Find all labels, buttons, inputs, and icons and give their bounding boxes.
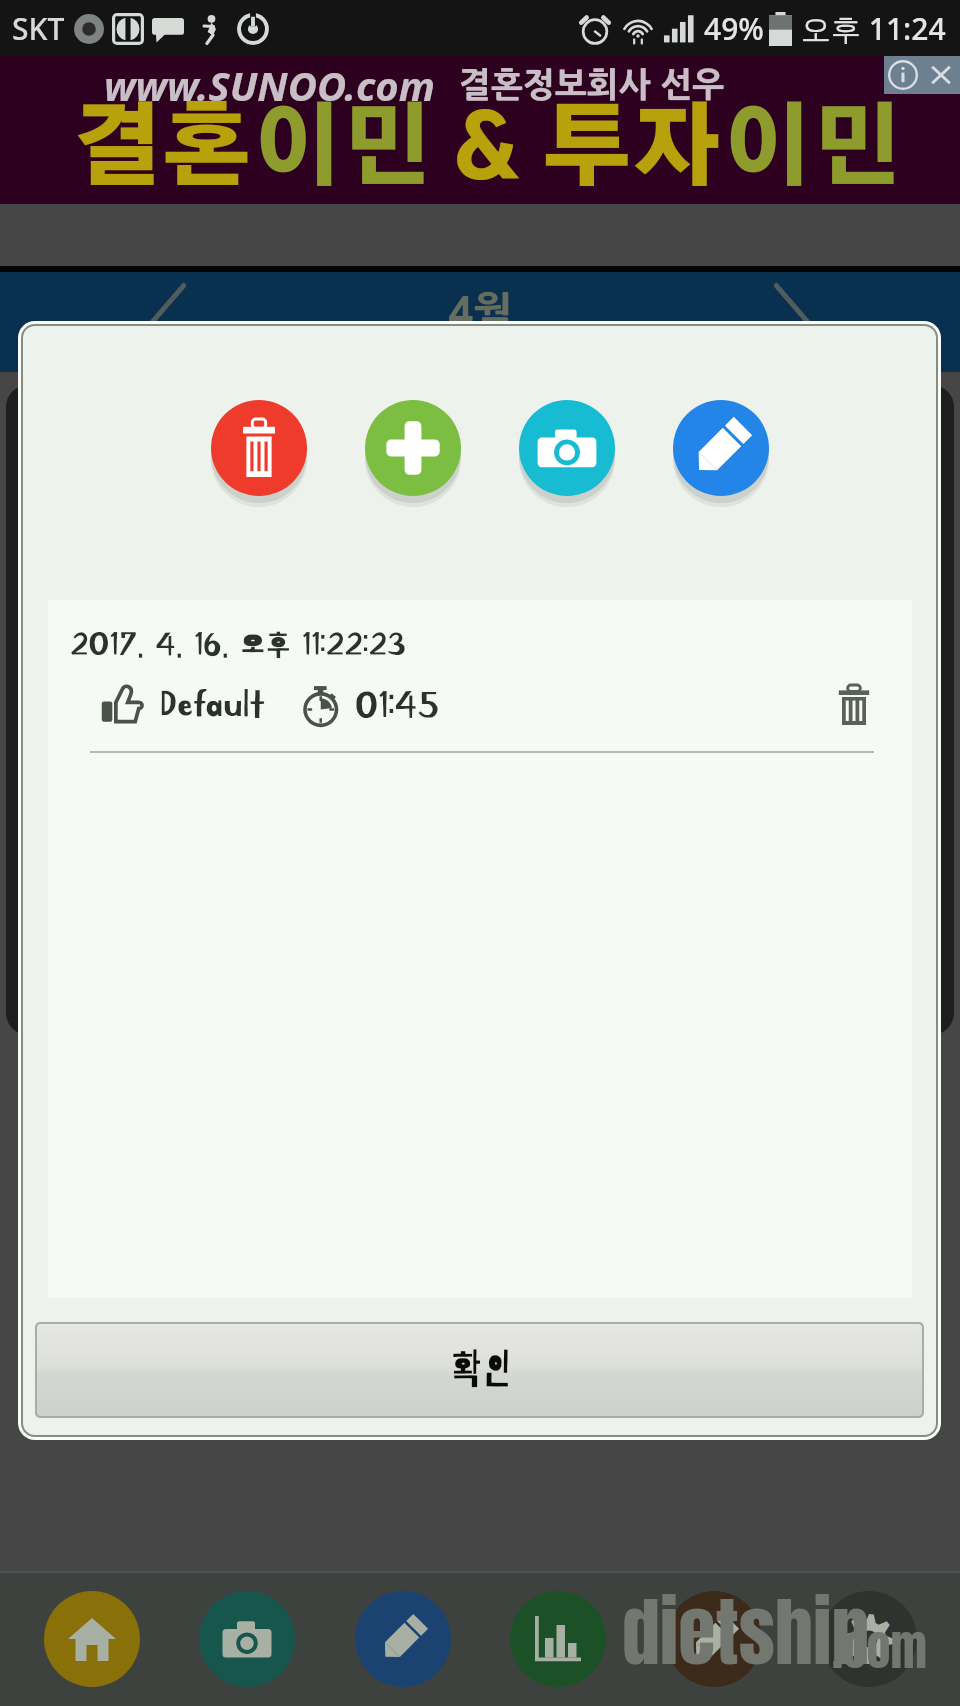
staticText: 투자 <box>542 108 722 196</box>
button[interactable]: Camera <box>199 1591 295 1687</box>
staticText: 결혼 <box>72 108 252 196</box>
button[interactable]: Settings <box>821 1591 917 1687</box>
staticText: 2017. 4. 16. 오후 11:22:23 <box>70 626 406 662</box>
staticText: 4월 <box>448 292 513 334</box>
button[interactable]: Home <box>44 1591 140 1687</box>
staticText: 01:45 <box>355 685 440 725</box>
staticText: dietshin <box>622 1575 870 1689</box>
button[interactable]: Camera <box>515 396 619 500</box>
button[interactable]: Close ad <box>922 56 960 94</box>
staticText: Default <box>160 685 265 725</box>
button[interactable]: Edit <box>669 396 773 500</box>
staticText: 이민 <box>252 108 432 196</box>
button[interactable]: Add <box>361 396 465 500</box>
button[interactable]: Stats <box>510 1591 606 1687</box>
button[interactable]: Delete <box>207 396 311 500</box>
staticText: & <box>432 108 542 196</box>
button[interactable]: Delete entry <box>830 681 878 729</box>
button[interactable]: Ad info <box>884 56 922 94</box>
button[interactable]: 확인 <box>37 1324 922 1416</box>
staticText: .com <box>832 1612 927 1684</box>
staticText: 결혼정보회사 선우 <box>459 68 725 102</box>
button[interactable]: Record <box>666 1591 762 1687</box>
staticText: 이민 <box>722 108 902 196</box>
staticText: www.SUNOO.com <box>104 58 435 112</box>
staticText: 확인 <box>450 1348 510 1392</box>
staticText: 49% <box>704 8 764 49</box>
staticText: SKT <box>12 8 65 49</box>
button[interactable]: Edit <box>355 1591 451 1687</box>
staticText: 오후 11:24 <box>801 8 946 49</box>
